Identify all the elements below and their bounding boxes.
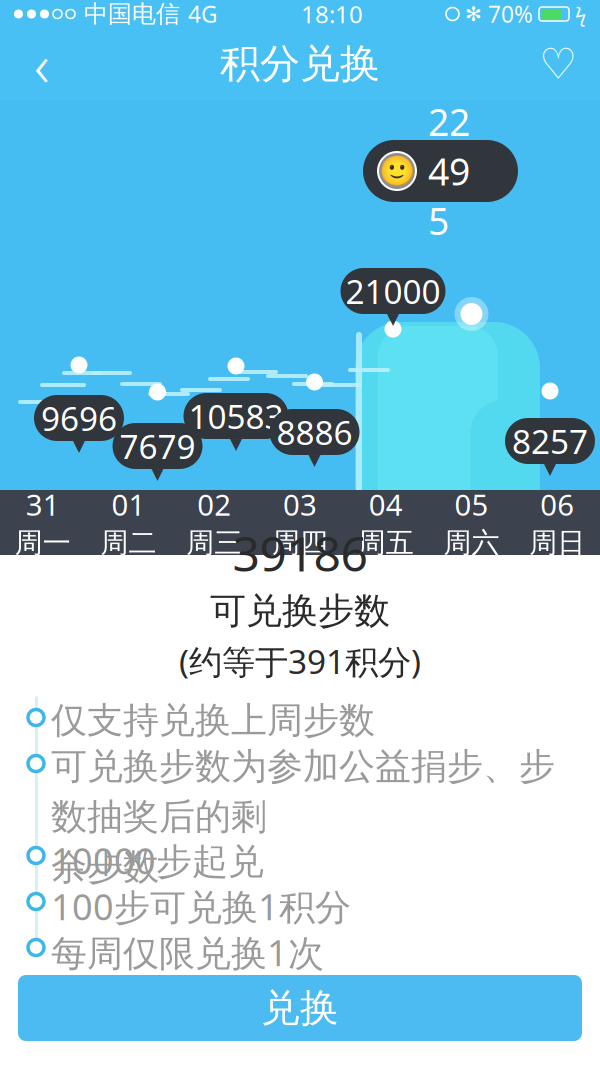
staticText: 03 — [283, 485, 317, 524]
button[interactable]: 兑换 — [18, 975, 582, 1041]
staticText: 04 — [369, 485, 403, 524]
staticText: 01 — [112, 485, 146, 524]
staticText: 100步可兑换1积分 — [51, 882, 351, 930]
staticText: (约等于391积分) — [179, 639, 421, 683]
staticText: ▾ — [151, 459, 163, 487]
staticText: 7679 — [119, 424, 195, 468]
staticText: 兑换 — [261, 984, 339, 1032]
staticText: 周日 — [529, 526, 585, 560]
staticText: 05 — [454, 485, 488, 524]
staticText: 39186 — [232, 521, 367, 585]
staticText: 周六 — [443, 526, 499, 560]
staticText: ϟ — [575, 1, 586, 27]
staticText: ▾ — [387, 304, 399, 332]
staticText: 18:10 — [301, 0, 363, 30]
staticText: 02 — [197, 485, 231, 524]
staticText: 22495 — [428, 97, 470, 245]
staticText: ▾ — [230, 429, 242, 457]
staticText: 总步数89186 — [368, 695, 584, 745]
staticText: 可兑换步数为参加公益捐步、步数抽奖后的剩 余步数 — [51, 744, 555, 889]
staticText: ▾ — [73, 431, 85, 459]
staticText: ▾ — [544, 454, 556, 482]
staticText: ✻ — [465, 3, 482, 25]
staticText: 积分兑换 — [220, 39, 380, 88]
staticText: 周二 — [101, 526, 157, 560]
staticText: ▾ — [308, 445, 320, 473]
staticText: 10583 — [188, 394, 283, 438]
staticText: ♡ — [539, 40, 577, 88]
staticText: 周四 — [272, 526, 328, 560]
staticText: 9696 — [41, 396, 117, 440]
staticText: 31 — [26, 485, 60, 524]
staticText: 8886 — [276, 410, 352, 454]
staticText: 仅支持兑换上周步数 — [51, 698, 375, 743]
staticText: 周一 — [15, 526, 71, 560]
staticText: 8257 — [512, 419, 588, 463]
staticText: 中国电信 — [84, 0, 180, 29]
staticText: 每周仅限兑换1次 — [51, 928, 324, 976]
staticText: 70% — [488, 0, 533, 29]
staticText: 周三 — [186, 526, 242, 560]
staticText: 21000 — [345, 269, 440, 313]
staticText: 周五 — [358, 526, 414, 560]
staticText: 可兑换步数 — [210, 589, 390, 633]
button[interactable]: Favorite — [528, 34, 588, 94]
staticText: ‹ — [34, 25, 50, 103]
button[interactable]: Back — [12, 34, 72, 94]
staticText: 10000步起兑 — [51, 836, 264, 884]
staticText: 🙂 — [378, 154, 415, 188]
staticText: 06 — [540, 485, 574, 524]
staticText: 4G — [188, 0, 218, 29]
